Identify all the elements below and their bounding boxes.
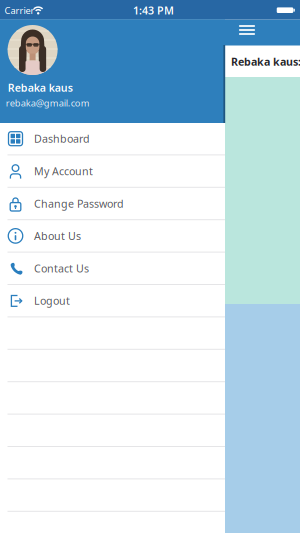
button[interactable]: About Us: [0, 220, 225, 252]
button[interactable]: Dashboard: [0, 122, 225, 155]
staticText: 1:43 PM: [133, 3, 174, 17]
staticText: Contact Us: [34, 261, 89, 275]
staticText: Rebaka kaus: [8, 80, 73, 95]
staticText: rebaka@gmail.com: [6, 97, 90, 109]
button[interactable]: [239, 25, 255, 35]
button[interactable]: Contact Us: [0, 252, 225, 284]
staticText: About Us: [34, 229, 81, 243]
staticText: Dashboard: [34, 132, 90, 146]
button[interactable]: My Account: [0, 155, 225, 187]
staticText: Carrier: [4, 4, 34, 16]
button[interactable]: Logout: [0, 284, 225, 317]
staticText: Logout: [34, 294, 70, 308]
staticText: My Account: [34, 164, 93, 178]
staticText: Change Password: [34, 196, 124, 211]
button[interactable]: Change Password: [0, 187, 225, 220]
staticText: Rebaka kaus:Sales: [231, 54, 300, 69]
